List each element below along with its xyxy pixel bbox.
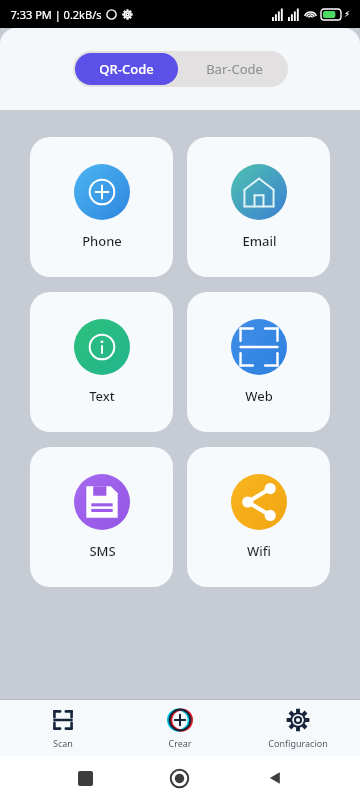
button[interactable]: SMS — [30, 447, 173, 587]
button[interactable]: Web — [187, 292, 330, 432]
staticText: QR-Code — [99, 60, 154, 78]
button[interactable]: Scan — [8, 700, 118, 756]
button[interactable]: QR-Code — [75, 53, 178, 85]
staticText: Configuracion — [268, 737, 328, 749]
button[interactable]: Email — [187, 137, 330, 277]
staticText: Bar-Code — [206, 60, 263, 78]
button[interactable]: Phone — [30, 137, 173, 277]
staticText: Web — [245, 387, 273, 405]
button[interactable]: Bar-Code — [180, 51, 288, 87]
button[interactable]: Text — [30, 292, 173, 432]
button[interactable]: Configuracion — [243, 700, 353, 756]
staticText: Crear — [168, 737, 192, 749]
staticText: ⚡ — [344, 10, 350, 19]
staticText: Email — [242, 232, 277, 250]
button[interactable]: Crear — [125, 700, 235, 756]
staticText: SMS — [89, 542, 116, 560]
staticText: Scan — [53, 737, 73, 749]
staticText: Wifi — [247, 542, 271, 560]
button[interactable]: Wifi — [187, 447, 330, 587]
staticText: Text — [89, 387, 115, 405]
staticText: 7:33 PM | 0.2kB/s — [10, 7, 102, 22]
staticText: Phone — [82, 232, 122, 250]
